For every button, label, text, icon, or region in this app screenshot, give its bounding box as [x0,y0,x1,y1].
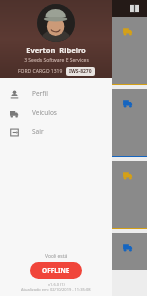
staticText: FORD CARGO 1319 [18,68,63,75]
button[interactable]: Veículos [0,103,112,122]
button[interactable]: Franco, 230 [0,17,147,85]
staticText: Veículos [32,108,57,117]
staticText: 3 Seeds Software E Services [24,57,89,64]
staticText: Everton Ribeiro [26,45,86,55]
button[interactable]: Perfil [0,84,112,103]
staticText: Atualizado em: 02/10/2019 - 11:35:08 [21,287,91,292]
button[interactable]: 11:30 JHE7MC [0,161,147,229]
staticText: Você está [45,253,68,260]
staticText: IWS-8270 [69,68,92,75]
staticText: v1.6.0 (1) [48,282,65,287]
button[interactable]: 12:82 O98OKA [0,233,147,296]
staticText: Sair [32,127,44,136]
staticText: 12:82 O98OKA [2,286,33,292]
button[interactable]: Relatórios [130,4,139,13]
staticText: OFFLINE [42,266,70,275]
staticText: Perfil [32,89,48,98]
button[interactable]: Sair [0,122,112,141]
button[interactable]: 11:03 HVGO8O [0,89,147,157]
staticText: Franco, 230 [2,48,30,55]
button[interactable]: OFFLINE [30,262,82,279]
staticText: 11:04 JRO76H [2,75,31,81]
